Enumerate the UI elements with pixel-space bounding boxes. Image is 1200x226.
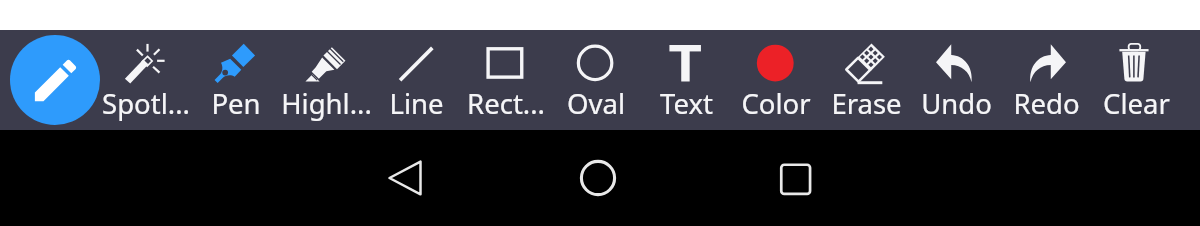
staticText: Rect... xyxy=(467,85,545,122)
button[interactable]: Draw xyxy=(10,35,100,125)
button[interactable]: Text xyxy=(641,30,731,130)
staticText: Spotl... xyxy=(102,85,190,122)
staticText: Text xyxy=(660,85,713,122)
button[interactable]: Undo xyxy=(911,30,1001,130)
button[interactable]: Line xyxy=(371,30,461,130)
staticText: Clear xyxy=(1103,85,1170,122)
button[interactable]: Redo xyxy=(1001,30,1091,130)
staticText: Oval xyxy=(567,85,625,122)
button[interactable]: Pen xyxy=(191,30,281,130)
button[interactable]: Back xyxy=(371,130,439,226)
button[interactable]: Color xyxy=(731,30,821,130)
button[interactable]: Highl... xyxy=(281,30,371,130)
staticText: Undo xyxy=(921,85,992,122)
button[interactable]: Spotl... xyxy=(101,30,191,130)
staticText: Color xyxy=(741,85,811,122)
button[interactable]: Oval xyxy=(551,30,641,130)
staticText: Pen xyxy=(211,85,261,122)
button[interactable]: Rect... xyxy=(461,30,551,130)
staticText: Redo xyxy=(1013,85,1080,122)
staticText: Erase xyxy=(831,85,902,122)
button[interactable]: Erase xyxy=(821,30,911,130)
button[interactable]: Clear xyxy=(1091,30,1181,130)
button[interactable]: Recents xyxy=(760,130,828,226)
button[interactable]: Home xyxy=(564,130,632,226)
staticText: Highl... xyxy=(281,85,372,122)
staticText: Line xyxy=(389,85,444,122)
